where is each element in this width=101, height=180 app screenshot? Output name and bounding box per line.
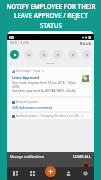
staticText: Android system	[16, 100, 38, 104]
staticText: WED, 13 JUN	[10, 41, 29, 45]
button[interactable]: Flashlight	[68, 50, 77, 59]
button[interactable]: Rotate	[82, 50, 91, 59]
button[interactable]: Greentape • now ∨	[9, 67, 92, 96]
button[interactable]: Add	[45, 166, 56, 177]
button[interactable]: Apps	[28, 169, 37, 178]
button[interactable]: Bluetooth	[39, 50, 48, 59]
staticText: CLEAR ALL	[73, 154, 91, 159]
button[interactable]: Wi-Fi	[10, 50, 19, 59]
staticText: Manage notifications	[10, 154, 45, 159]
staticText: NOTIFY EMPLOYEE FOR THEIR LEAVE APPROVE …	[6, 2, 96, 30]
staticText: USB debugging connected	[12, 106, 53, 109]
button[interactable]: Profile	[64, 169, 73, 178]
button[interactable]: CLEAR ALL	[73, 154, 91, 159]
staticText: Android system • Charging this device vi…	[16, 114, 83, 118]
button[interactable]: Android system • Charging this device vi…	[9, 113, 92, 119]
button[interactable]: Do not disturb	[53, 50, 62, 59]
button[interactable]: Sound	[24, 50, 33, 59]
button[interactable]: Dashboard	[11, 169, 20, 178]
button[interactable]: Calendar	[82, 162, 90, 170]
button[interactable]: Settings	[81, 169, 90, 178]
staticText: Your leave request from 14 Jun 2018 - 14…	[12, 81, 80, 94]
staticText: Greentape • now ∨	[16, 69, 45, 73]
staticText: Leave Approved	[12, 75, 40, 80]
button[interactable]: Android system	[9, 98, 92, 111]
button[interactable]: Manage notifications	[10, 154, 45, 159]
